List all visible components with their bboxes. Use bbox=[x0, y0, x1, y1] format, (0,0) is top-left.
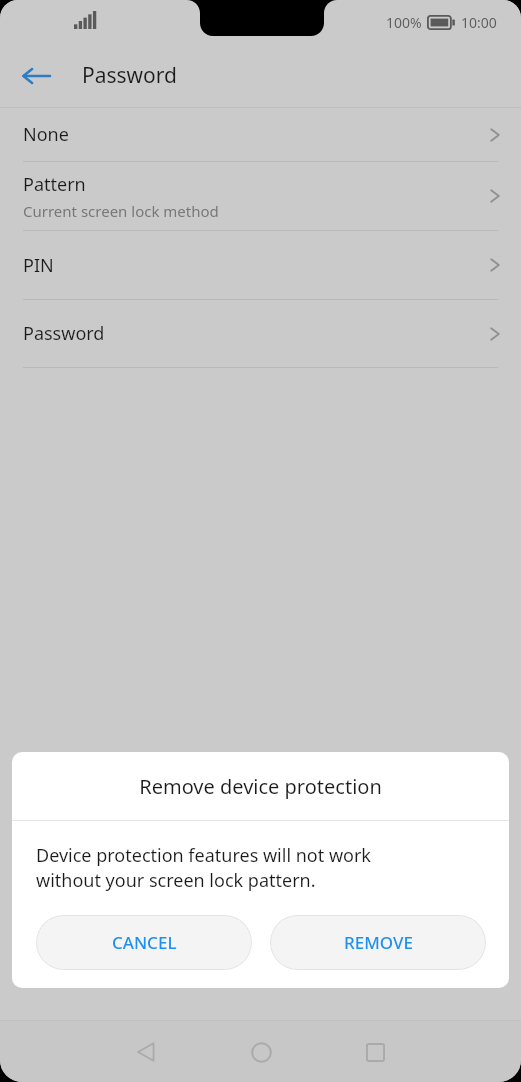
staticText: without your screen lock pattern. bbox=[36, 868, 316, 893]
button[interactable]: Back bbox=[122, 1028, 170, 1076]
staticText: CANCEL bbox=[112, 931, 177, 954]
button[interactable]: Home bbox=[237, 1028, 285, 1076]
staticText: Password bbox=[23, 321, 105, 346]
button[interactable]: REMOVE bbox=[270, 915, 486, 970]
staticText: None bbox=[23, 122, 69, 147]
staticText: 10:00 bbox=[461, 13, 497, 32]
staticText: Password bbox=[82, 61, 177, 90]
button[interactable]: None bbox=[0, 108, 521, 161]
button[interactable]: CANCEL bbox=[36, 915, 252, 970]
staticText: Device protection features will not work bbox=[36, 843, 371, 868]
button[interactable]: Pattern bbox=[0, 162, 521, 230]
button[interactable]: Password bbox=[0, 300, 521, 367]
staticText: Pattern bbox=[23, 172, 86, 197]
button[interactable]: Back bbox=[14, 54, 58, 98]
staticText: PIN bbox=[23, 253, 54, 278]
button[interactable]: Recent apps bbox=[351, 1028, 399, 1076]
button[interactable]: PIN bbox=[0, 231, 521, 299]
staticText: Remove device protection bbox=[139, 773, 382, 800]
staticText: 100% bbox=[386, 13, 422, 32]
staticText: REMOVE bbox=[344, 931, 413, 954]
staticText: Current screen lock method bbox=[23, 201, 219, 221]
